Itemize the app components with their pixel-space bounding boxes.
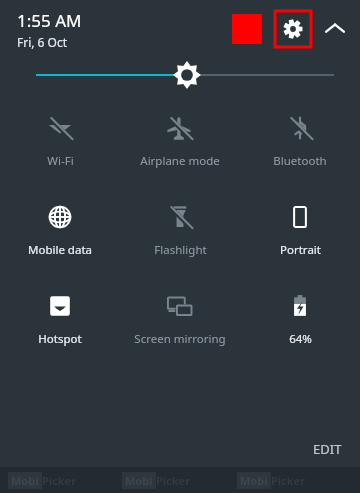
button[interactable]: 64% <box>240 290 360 349</box>
button[interactable]: Hotspot <box>0 290 120 349</box>
button[interactable]: Bluetooth <box>240 112 360 171</box>
button[interactable]: Screen mirroring <box>120 290 240 349</box>
staticText: Mobi <box>240 473 268 488</box>
staticText: Picker <box>271 473 306 488</box>
button[interactable]: Collapse <box>320 14 350 44</box>
staticText: Mobi <box>11 473 39 488</box>
staticText: Flashlight <box>154 242 207 258</box>
button[interactable]: Mobile data <box>0 201 120 260</box>
staticText: Bluetooth <box>273 153 327 169</box>
staticText: Mobile data <box>28 242 92 258</box>
button[interactable]: Settings <box>275 11 311 47</box>
staticText: Picker <box>156 473 191 488</box>
staticText: Portrait <box>280 242 321 258</box>
staticText: Mobi <box>125 473 153 488</box>
button[interactable]: Airplane mode <box>120 112 240 171</box>
staticText: 1:55 AM <box>17 9 82 32</box>
staticText: EDIT <box>313 440 342 458</box>
staticText: Wi-Fi <box>47 153 74 169</box>
button[interactable]: EDIT <box>309 436 346 462</box>
staticText: Airplane mode <box>140 153 220 169</box>
staticText: 64% <box>289 331 312 347</box>
button[interactable]: Portrait <box>240 201 360 260</box>
staticText: Fri, 6 Oct <box>17 34 68 50</box>
staticText: Hotspot <box>38 331 82 347</box>
button[interactable]: Flashlight <box>120 201 240 260</box>
button[interactable]: Wi-Fi <box>0 112 120 171</box>
staticText: Screen mirroring <box>134 331 226 347</box>
staticText: Picker <box>42 473 77 488</box>
button[interactable]: Brightness <box>0 58 360 92</box>
